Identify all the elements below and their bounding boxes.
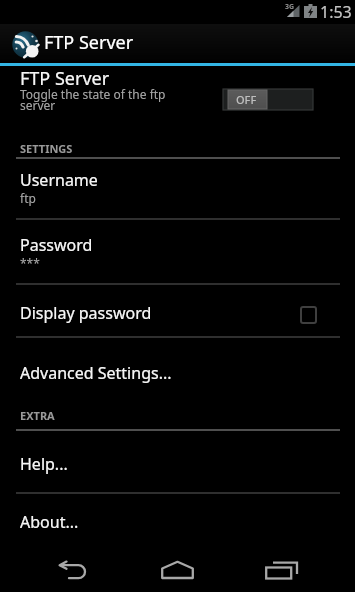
staticText: Toggle the state of the ftp server	[20, 86, 166, 114]
staticText: ftp	[20, 190, 36, 206]
staticText: Display password	[20, 302, 152, 324]
button[interactable]: OFF	[223, 89, 313, 110]
button[interactable]: Advanced Settings...	[0, 338, 355, 390]
staticText: Username	[20, 169, 98, 191]
staticText: ***	[20, 255, 40, 271]
staticText: 1:53	[320, 1, 352, 23]
button[interactable]: Display password	[0, 285, 355, 336]
button[interactable]: FTP Server	[0, 66, 355, 140]
button[interactable]: Help...	[0, 431, 355, 492]
staticText: SETTINGS	[20, 141, 73, 156]
button[interactable]: Password	[0, 220, 355, 283]
staticText: About...	[20, 511, 79, 533]
button[interactable]	[56, 560, 90, 582]
staticText: FTP Server	[44, 30, 134, 55]
button[interactable]: Username	[0, 159, 355, 218]
staticText: FTP Server	[20, 66, 110, 91]
staticText: 3G	[285, 2, 295, 12]
staticText: Password	[20, 234, 93, 256]
button[interactable]: About...	[0, 494, 355, 544]
staticText: Advanced Settings...	[20, 362, 172, 384]
staticText: OFF	[236, 92, 257, 107]
button[interactable]	[263, 560, 300, 582]
staticText: Help...	[20, 453, 68, 475]
button[interactable]	[159, 559, 196, 581]
staticText: EXTRA	[20, 408, 55, 423]
